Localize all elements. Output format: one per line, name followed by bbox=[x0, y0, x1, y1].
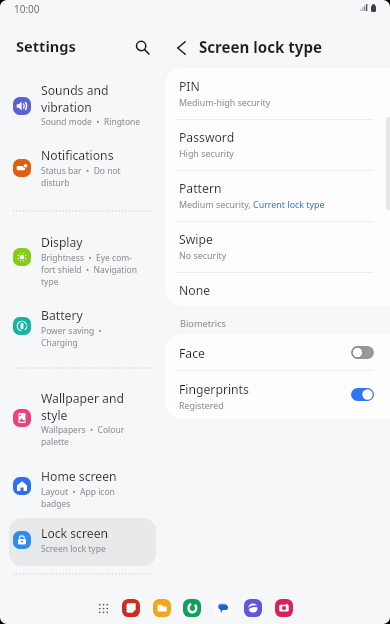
staticText: Registered bbox=[179, 399, 224, 411]
button[interactable]: All apps bbox=[96, 601, 110, 615]
staticText: Screen lock type bbox=[199, 37, 323, 58]
button[interactable]: Swipe bbox=[165, 221, 390, 272]
staticText: Sound mode • Ringtone bbox=[41, 116, 141, 128]
button[interactable]: Fingerprints bbox=[165, 370, 390, 419]
staticText: Screen lock type bbox=[41, 543, 106, 555]
button[interactable]: Camera bbox=[275, 599, 293, 617]
button[interactable]: None bbox=[165, 272, 390, 306]
staticText: Password bbox=[179, 129, 235, 146]
button[interactable]: Messages bbox=[214, 599, 232, 617]
button[interactable]: Face bbox=[165, 334, 390, 370]
button[interactable] bbox=[5, 380, 157, 436]
staticText: Medium security, Current lock type bbox=[179, 198, 325, 210]
staticText: Swipe bbox=[179, 231, 213, 248]
button[interactable] bbox=[5, 137, 157, 182]
staticText: Power saving • Charging bbox=[41, 325, 142, 349]
staticText: Face bbox=[179, 345, 205, 362]
staticText: Status bar • Do not disturb bbox=[41, 165, 142, 189]
staticText: None bbox=[179, 282, 211, 299]
staticText: High security bbox=[179, 147, 234, 159]
staticText: Medium-high security bbox=[179, 96, 271, 108]
staticText: Wallpapers • Colour palette bbox=[41, 424, 142, 448]
staticText: PIN bbox=[179, 78, 200, 95]
staticText: No security bbox=[179, 249, 227, 261]
staticText: Notifications bbox=[41, 147, 114, 164]
staticText: Brightness • Eye com- fort shield • Navi… bbox=[41, 252, 138, 288]
staticText: Pattern bbox=[179, 180, 222, 197]
button[interactable] bbox=[5, 72, 157, 128]
staticText: Wallpaper and style bbox=[41, 390, 142, 423]
button[interactable]: Pattern bbox=[165, 170, 390, 221]
button[interactable]: My Files bbox=[153, 599, 171, 617]
staticText: Fingerprints bbox=[179, 381, 249, 398]
button[interactable]: Back bbox=[168, 34, 195, 61]
button[interactable] bbox=[5, 515, 157, 560]
staticText: Lock screen bbox=[41, 525, 109, 542]
button[interactable]: Contacts bbox=[183, 599, 201, 617]
button[interactable]: Notes bbox=[122, 599, 140, 617]
staticText: 10:00 bbox=[14, 2, 40, 16]
button[interactable]: PIN bbox=[165, 68, 390, 119]
staticText: Sounds and vibration bbox=[41, 82, 142, 115]
button[interactable] bbox=[5, 224, 157, 269]
button[interactable] bbox=[5, 297, 157, 342]
staticText: Biometrics bbox=[180, 317, 226, 330]
staticText: Settings bbox=[16, 36, 76, 56]
staticText: Home screen bbox=[41, 468, 117, 485]
staticText: Display bbox=[41, 234, 83, 251]
button[interactable] bbox=[5, 458, 157, 503]
button[interactable]: Password bbox=[165, 119, 390, 170]
staticText: Layout • App icon badges bbox=[41, 486, 142, 510]
staticText: Battery bbox=[41, 307, 83, 324]
button[interactable]: Search bbox=[129, 34, 155, 60]
button[interactable]: Internet bbox=[244, 599, 262, 617]
